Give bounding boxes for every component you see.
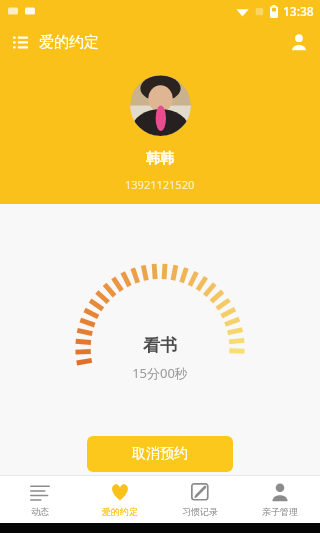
- staticText: 看书: [143, 335, 177, 356]
- staticText: 爱的约定: [102, 506, 138, 517]
- button[interactable]: 爱的约定: [0, 25, 111, 60]
- staticText: 15分00秒: [132, 364, 188, 382]
- button[interactable]: 亲子管理: [240, 475, 320, 523]
- staticText: 动态: [31, 506, 49, 517]
- button[interactable]: 取消预约: [87, 436, 233, 472]
- button[interactable]: 习惯记录: [160, 475, 240, 523]
- button[interactable]: 动态: [0, 475, 80, 523]
- staticText: 取消预约: [132, 445, 188, 463]
- button[interactable]: Profile: [278, 25, 320, 59]
- staticText: 13:38: [283, 3, 314, 19]
- button[interactable]: Avatar: [130, 75, 191, 136]
- staticText: 韩韩: [146, 150, 174, 168]
- staticText: 爱的约定: [39, 33, 99, 52]
- staticText: 亲子管理: [262, 506, 298, 517]
- staticText: 13921121520: [125, 177, 195, 192]
- button[interactable]: 爱的约定: [80, 475, 160, 523]
- staticText: 习惯记录: [182, 506, 218, 517]
